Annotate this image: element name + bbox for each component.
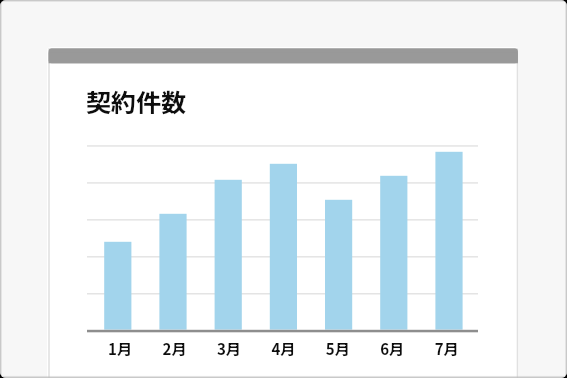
button[interactable]: 契約件数 棒グラフ — [47, 47, 519, 378]
